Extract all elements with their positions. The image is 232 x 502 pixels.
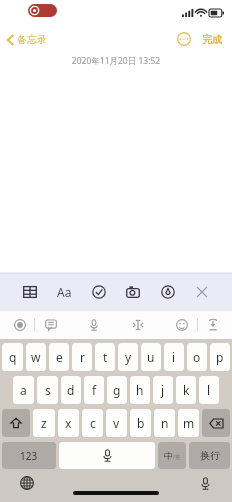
staticText: 2020年11月20日 13:52 bbox=[0, 55, 232, 67]
staticText: w bbox=[31, 349, 41, 365]
button[interactable]: Voice input bbox=[83, 314, 104, 335]
staticText: t bbox=[103, 349, 108, 365]
button[interactable]: c bbox=[82, 409, 103, 437]
button[interactable]: g bbox=[107, 376, 127, 404]
button[interactable]: r bbox=[72, 343, 92, 371]
button[interactable]: o bbox=[187, 343, 207, 371]
button[interactable]: b bbox=[130, 409, 151, 437]
staticText: l bbox=[207, 382, 211, 398]
button[interactable]: q bbox=[2, 343, 23, 371]
staticText: r bbox=[80, 349, 85, 365]
staticText: Aa bbox=[57, 284, 72, 300]
staticText: b bbox=[137, 415, 145, 431]
button[interactable]: h bbox=[130, 376, 150, 404]
button[interactable]: Aa bbox=[51, 279, 77, 305]
staticText: /英 bbox=[173, 453, 181, 461]
button[interactable]: 备忘录 bbox=[5, 30, 49, 49]
button[interactable]: x bbox=[58, 409, 79, 437]
button[interactable]: Camera bbox=[120, 279, 146, 305]
button[interactable]: Markup bbox=[155, 279, 181, 305]
staticText: m bbox=[183, 415, 195, 431]
button[interactable]: d bbox=[61, 376, 81, 404]
button[interactable]: l bbox=[199, 376, 219, 404]
button[interactable]: Checklist bbox=[86, 279, 112, 305]
button[interactable]: j bbox=[153, 376, 173, 404]
button[interactable]: Hide keyboard bbox=[202, 314, 223, 335]
button[interactable]: Space, voice input bbox=[59, 442, 155, 469]
staticText: q bbox=[9, 349, 17, 365]
staticText: v bbox=[113, 415, 120, 431]
button[interactable]: a bbox=[13, 376, 34, 404]
button[interactable]: p bbox=[210, 343, 230, 371]
staticText: d bbox=[67, 382, 75, 398]
staticText: o bbox=[193, 349, 201, 365]
button[interactable]: Insert table bbox=[17, 279, 43, 305]
button[interactable]: More options bbox=[174, 29, 194, 49]
button[interactable]: Change keyboard bbox=[16, 472, 38, 494]
button[interactable]: m bbox=[178, 409, 199, 437]
button[interactable]: Emoji bbox=[171, 314, 192, 335]
staticText: 完成 bbox=[202, 33, 222, 46]
staticText: u bbox=[147, 349, 155, 365]
button[interactable]: Move cursor bbox=[127, 314, 148, 335]
button[interactable]: w bbox=[26, 343, 46, 371]
button[interactable]: Dictation bbox=[194, 472, 216, 494]
button[interactable]: y bbox=[118, 343, 138, 371]
button[interactable]: k bbox=[176, 376, 196, 404]
staticText: n bbox=[161, 415, 169, 431]
button[interactable]: Shift bbox=[2, 409, 30, 437]
button[interactable]: Close toolbar bbox=[189, 279, 215, 305]
button[interactable]: Stop recording bbox=[28, 4, 57, 17]
button[interactable]: t bbox=[95, 343, 115, 371]
staticText: e bbox=[56, 349, 63, 365]
staticText: f bbox=[92, 382, 97, 398]
button[interactable]: Input method bbox=[9, 314, 30, 335]
button[interactable]: Backspace bbox=[202, 409, 230, 437]
button[interactable]: f bbox=[84, 376, 104, 404]
staticText: h bbox=[136, 382, 144, 398]
staticText: z bbox=[41, 415, 47, 431]
button[interactable]: 123 bbox=[2, 442, 56, 469]
button[interactable]: n bbox=[154, 409, 175, 437]
button[interactable]: 完成 bbox=[200, 30, 224, 49]
button[interactable]: s bbox=[37, 376, 58, 404]
staticText: p bbox=[216, 349, 224, 365]
staticText: s bbox=[45, 382, 51, 398]
button[interactable]: z bbox=[33, 409, 55, 437]
button[interactable]: 中 bbox=[158, 442, 186, 469]
staticText: x bbox=[65, 415, 72, 431]
button[interactable]: e bbox=[49, 343, 69, 371]
staticText: y bbox=[125, 349, 132, 365]
staticText: 备忘录 bbox=[17, 33, 47, 46]
button[interactable]: 换行 bbox=[189, 442, 230, 469]
staticText: i bbox=[172, 349, 176, 365]
staticText: k bbox=[183, 382, 190, 398]
staticText: c bbox=[90, 415, 96, 431]
staticText: j bbox=[161, 382, 165, 398]
staticText: a bbox=[20, 382, 27, 398]
button[interactable]: u bbox=[141, 343, 161, 371]
staticText: 中 bbox=[164, 450, 173, 461]
button[interactable]: i bbox=[164, 343, 184, 371]
staticText: g bbox=[113, 382, 121, 398]
staticText: 123 bbox=[20, 449, 38, 463]
button[interactable]: v bbox=[106, 409, 127, 437]
staticText: 换行 bbox=[200, 449, 220, 462]
button[interactable]: Messages bbox=[40, 314, 61, 335]
